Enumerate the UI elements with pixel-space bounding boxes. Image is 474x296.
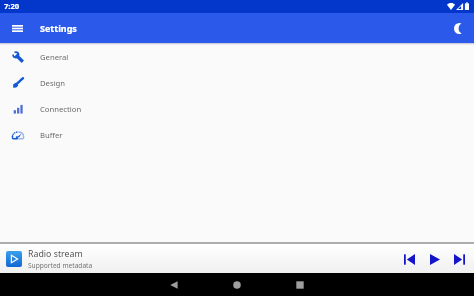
staticText: General — [40, 52, 69, 62]
staticText: 7:20 — [4, 1, 19, 11]
staticText: Radio stream — [28, 248, 83, 260]
button[interactable]: Design — [0, 70, 474, 96]
button[interactable]: Recent apps — [288, 273, 312, 296]
staticText: Supported metadata — [28, 261, 93, 270]
button[interactable]: Buffer — [0, 122, 474, 148]
button[interactable]: Home — [225, 273, 249, 296]
staticText: Buffer — [40, 130, 63, 140]
button[interactable]: Previous — [397, 246, 422, 272]
button[interactable]: Play — [422, 246, 447, 272]
button[interactable]: Next — [447, 246, 472, 272]
staticText: Design — [40, 78, 66, 88]
staticText: Settings — [40, 22, 77, 34]
button[interactable]: Back — [162, 273, 186, 296]
button[interactable]: Open navigation menu — [8, 19, 26, 37]
button[interactable]: Toggle dark mode — [450, 19, 468, 37]
button[interactable]: Connection — [0, 96, 474, 122]
staticText: Connection — [40, 104, 82, 114]
button[interactable]: General — [0, 44, 474, 70]
